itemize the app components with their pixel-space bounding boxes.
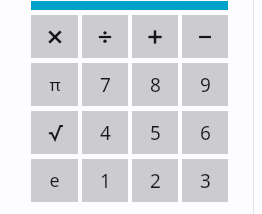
button[interactable]: 3	[182, 159, 228, 202]
button[interactable]: 5	[132, 111, 178, 154]
button[interactable]: Divide	[82, 15, 128, 58]
button[interactable]: 9	[182, 63, 228, 106]
staticText: 6	[200, 120, 211, 146]
button[interactable]: e	[31, 159, 78, 202]
button[interactable]: 4	[82, 111, 128, 154]
button[interactable]: Multiply	[31, 15, 78, 58]
button[interactable]: Minus	[182, 15, 228, 58]
button[interactable]: 6	[182, 111, 228, 154]
staticText: e	[49, 168, 60, 193]
button[interactable]: 2	[132, 159, 178, 202]
staticText: π	[49, 73, 61, 96]
button[interactable]: 8	[132, 63, 178, 106]
staticText: 9	[200, 72, 211, 98]
staticText: 7	[100, 72, 111, 98]
staticText: 8	[150, 72, 161, 98]
button[interactable]: 1	[82, 159, 128, 202]
staticText: 3	[200, 168, 211, 194]
button[interactable]: Plus	[132, 15, 178, 58]
button[interactable]: Square root	[31, 111, 78, 154]
staticText: 5	[150, 120, 161, 146]
staticText: 4	[100, 120, 111, 146]
button[interactable]: 7	[82, 63, 128, 106]
staticText: 1	[100, 168, 111, 194]
staticText: 2	[150, 168, 161, 194]
button[interactable]: π	[31, 63, 78, 106]
